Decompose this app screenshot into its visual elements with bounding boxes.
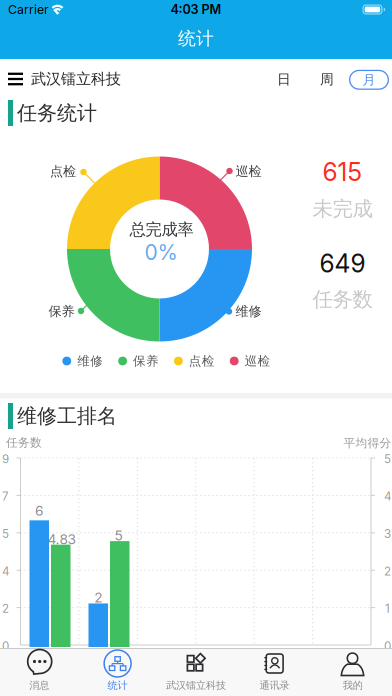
staticText: 点检 <box>189 353 215 369</box>
staticText: 平均得分 <box>343 436 391 450</box>
staticText: 我的 <box>343 679 363 692</box>
staticText: 615 <box>322 157 362 187</box>
button[interactable]: 日 <box>269 67 299 91</box>
staticText: 统计 <box>108 679 128 692</box>
staticText: 4 <box>2 564 9 578</box>
button[interactable]: 菜单 <box>8 73 23 85</box>
staticText: 通讯录 <box>259 679 289 692</box>
staticText: 点检 <box>50 163 76 180</box>
staticText: 2 <box>2 602 9 616</box>
button[interactable]: 武汉镭立科技 <box>157 648 235 696</box>
button[interactable]: 周 <box>312 67 342 91</box>
staticText: 5 <box>384 452 391 466</box>
button[interactable]: 我的 <box>314 648 392 696</box>
staticText: 任务数 <box>6 435 42 450</box>
staticText: 消息 <box>29 679 49 692</box>
staticText: 4 <box>384 489 391 503</box>
staticText: 2 <box>94 589 102 606</box>
staticText: 1 <box>385 602 390 616</box>
staticText: 7 <box>2 489 9 503</box>
staticText: 武汉镭立科技 <box>31 69 121 88</box>
staticText: 6 <box>35 502 44 519</box>
staticText: 任务数 <box>312 287 372 312</box>
staticText: 统计 <box>178 27 214 50</box>
staticText: 巡检 <box>235 163 261 180</box>
staticText: 维修 <box>235 303 261 320</box>
staticText: 月 <box>362 72 375 88</box>
staticText: 3 <box>384 527 391 541</box>
staticText: 日 <box>277 71 291 88</box>
staticText: 0 <box>384 639 391 653</box>
staticText: 维修工排名 <box>17 403 117 429</box>
staticText: 任务统计 <box>17 100 97 126</box>
staticText: 周 <box>320 71 334 88</box>
staticText: 武汉镭立科技 <box>166 679 226 692</box>
staticText: 2 <box>384 564 391 578</box>
staticText: 0 <box>2 639 9 653</box>
staticText: 649 <box>319 249 365 278</box>
button[interactable]: 统计 <box>79 648 157 696</box>
staticText: 未完成 <box>312 196 372 222</box>
staticText: Carrier <box>8 2 49 17</box>
staticText: 总完成率 <box>129 219 193 240</box>
staticText: 9 <box>2 452 9 466</box>
staticText: 5 <box>114 527 122 544</box>
button[interactable]: 通讯录 <box>235 648 313 696</box>
staticText: 保养 <box>48 303 74 320</box>
staticText: 0% <box>144 240 177 265</box>
staticText: 维修 <box>77 353 103 369</box>
staticText: 5 <box>2 527 9 541</box>
button[interactable]: 消息 <box>0 648 78 696</box>
staticText: 4:03 PM <box>170 2 221 17</box>
staticText: 保养 <box>133 353 159 369</box>
button[interactable]: 月 <box>349 70 389 90</box>
staticText: 巡检 <box>245 353 271 369</box>
staticText: 4.83 <box>47 531 75 547</box>
